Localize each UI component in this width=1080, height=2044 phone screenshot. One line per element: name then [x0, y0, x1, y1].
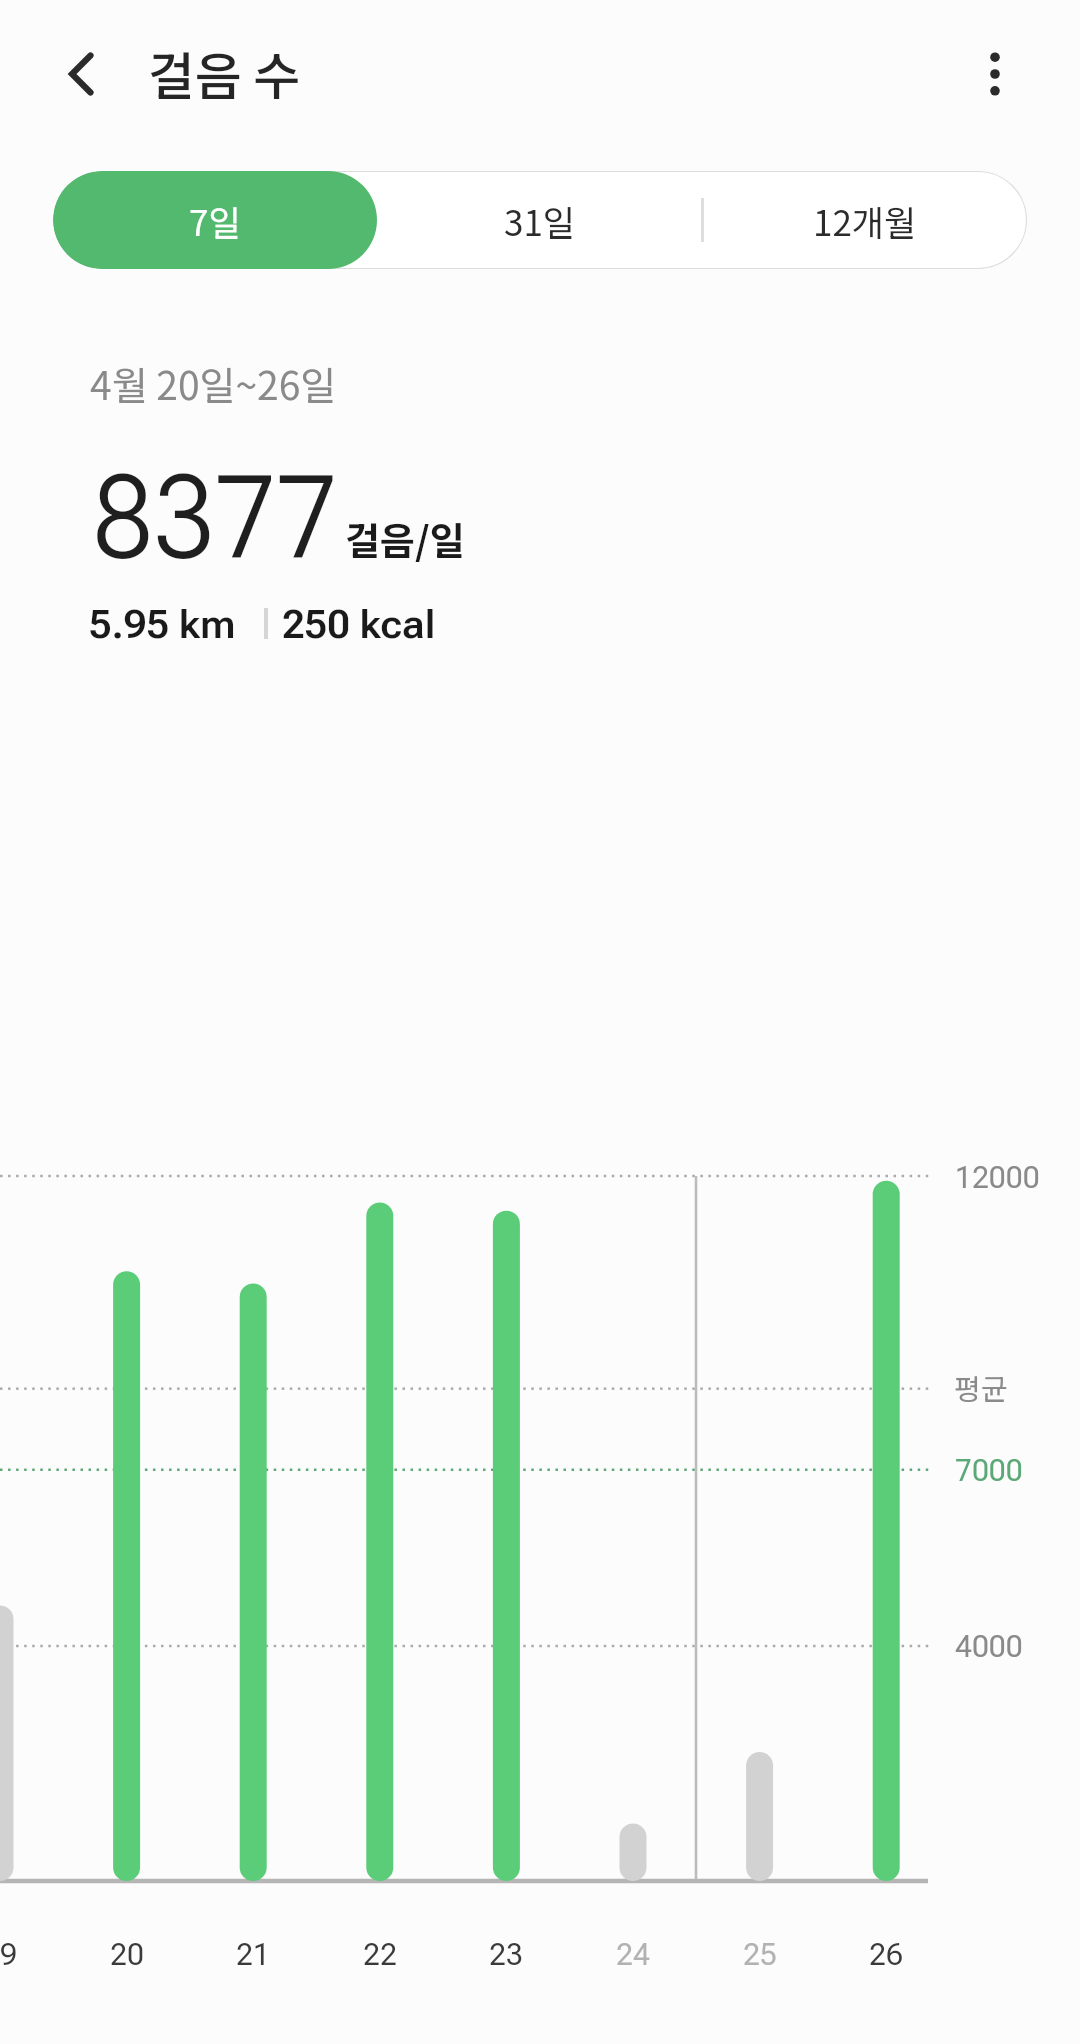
staticText: 31일: [504, 195, 576, 246]
staticText: 26: [869, 1937, 903, 1972]
staticText: 평균: [954, 1366, 1008, 1408]
staticText: 12개월: [813, 195, 917, 246]
staticText: 걸음/일: [345, 511, 465, 566]
staticText: 8377: [92, 450, 338, 585]
staticText: 7000: [955, 1453, 1023, 1488]
staticText: 4000: [955, 1629, 1023, 1664]
staticText: 20: [110, 1937, 144, 1972]
staticText: 5.95 km: [89, 601, 236, 648]
button[interactable]: 12개월: [702, 171, 1027, 269]
staticText: 7일: [189, 195, 241, 246]
button[interactable]: Back: [29, 34, 109, 114]
staticText: 19: [0, 1937, 17, 1972]
button[interactable]: 7일: [53, 171, 377, 269]
staticText: 12000: [955, 1160, 1040, 1195]
staticText: 250 kcal: [282, 601, 436, 648]
staticText: 21: [236, 1937, 270, 1972]
staticText: 23: [489, 1937, 523, 1972]
staticText: 걸음 수: [148, 36, 301, 110]
button[interactable]: More options: [955, 34, 1035, 114]
staticText: 4월 20일~26일: [90, 355, 337, 411]
staticText: 25: [743, 1937, 777, 1972]
button[interactable]: 31일: [377, 171, 702, 269]
staticText: 24: [616, 1937, 650, 1972]
staticText: 22: [363, 1937, 397, 1972]
